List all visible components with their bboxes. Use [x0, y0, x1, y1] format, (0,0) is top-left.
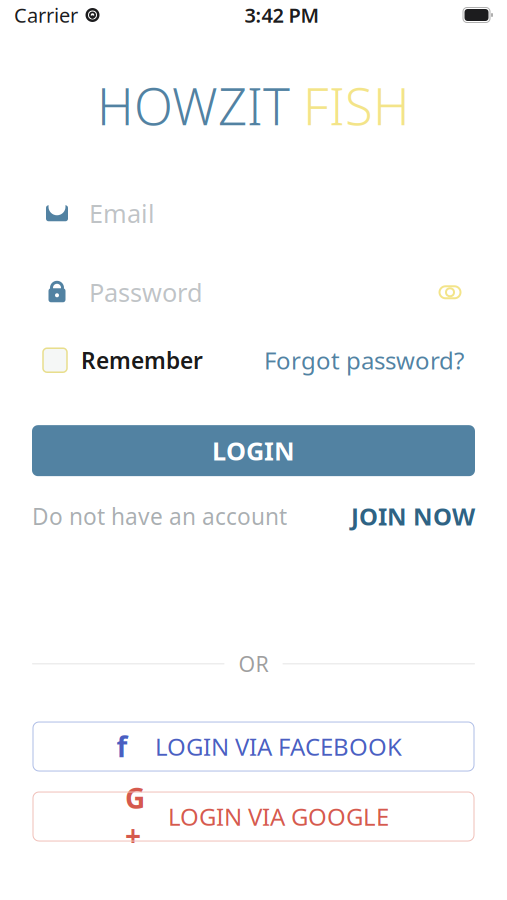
staticText: Email [89, 196, 155, 230]
button[interactable]: Forgot password? [264, 344, 464, 376]
button[interactable]: f [33, 722, 474, 771]
staticText: Carrier [14, 2, 78, 28]
staticText: OR [238, 650, 268, 678]
staticText: G+ [125, 779, 145, 854]
staticText: Do not have an account [32, 501, 287, 531]
button[interactable]: Remember [43, 345, 203, 375]
staticText: FISH [290, 72, 410, 139]
staticText: Remember [81, 345, 203, 375]
staticText: LOGIN [212, 434, 295, 467]
staticText: LOGIN VIA GOOGLE [168, 801, 389, 832]
button[interactable]: JOIN NOW [351, 500, 475, 532]
button[interactable]: Show password [438, 284, 462, 300]
staticText: Forgot password? [264, 344, 464, 376]
staticText: f [116, 728, 127, 765]
staticText: LOGIN VIA FACEBOOK [155, 731, 402, 762]
button[interactable]: LOGIN [32, 425, 475, 476]
staticText: JOIN NOW [351, 500, 475, 532]
button[interactable]: G+ [33, 792, 474, 841]
staticText: 3:42 PM [244, 2, 319, 28]
staticText: HOWZIT [97, 72, 290, 139]
staticText: Password [89, 275, 203, 309]
